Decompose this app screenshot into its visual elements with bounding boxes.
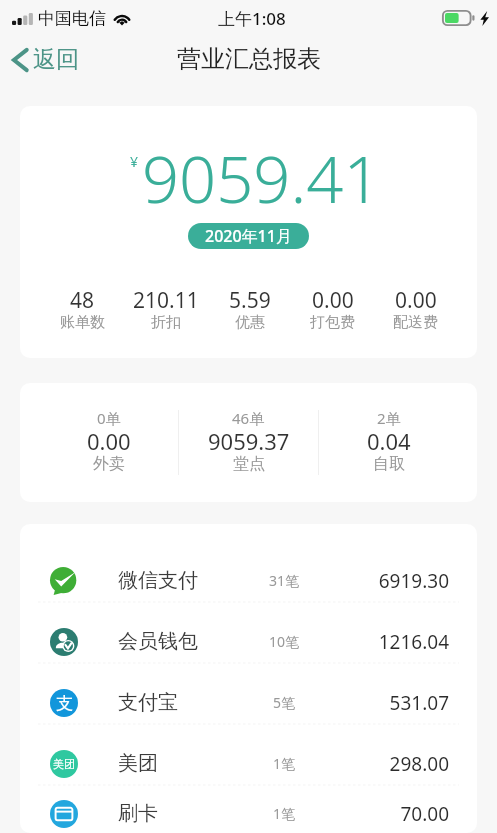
staticText: 10笔	[239, 632, 329, 651]
staticText: 支	[56, 693, 73, 714]
staticText: 0.00	[87, 426, 131, 456]
staticText: 9059.41	[142, 134, 381, 223]
staticText: 美团	[53, 757, 75, 771]
staticText: 531.07	[329, 690, 449, 716]
staticText: 美团	[118, 751, 158, 776]
button[interactable]: 微信支付	[20, 550, 477, 611]
staticText: 会员钱包	[118, 629, 198, 654]
staticText: 折扣	[151, 313, 181, 332]
button[interactable]: 美团	[20, 733, 477, 794]
staticText: 0.04	[367, 426, 411, 456]
staticText: 支付宝	[118, 690, 178, 715]
staticText: 返回	[33, 45, 79, 74]
button[interactable]: 支	[20, 672, 477, 733]
staticText: 0.00	[395, 286, 437, 315]
staticText: 210.11	[133, 286, 199, 315]
staticText: 1216.04	[329, 629, 449, 655]
staticText: 298.00	[329, 751, 449, 777]
staticText: 1笔	[239, 754, 329, 773]
staticText: 48	[70, 286, 95, 315]
staticText: 5笔	[239, 693, 329, 712]
staticText: 营业汇总报表	[177, 44, 321, 74]
staticText: 0单	[97, 408, 121, 428]
staticText: 堂点	[233, 454, 265, 474]
staticText: 优惠	[235, 313, 265, 332]
button[interactable]: 会员钱包	[20, 611, 477, 672]
staticText: 2单	[377, 408, 401, 428]
staticText: 外卖	[93, 454, 125, 474]
staticText: 46单	[232, 408, 265, 428]
staticText: 0.00	[312, 286, 354, 315]
staticText: 微信支付	[118, 568, 198, 593]
staticText: 6919.30	[329, 568, 449, 594]
staticText: 配送费	[393, 313, 438, 332]
button[interactable]: 刷卡	[20, 794, 477, 833]
staticText: 中国电信	[38, 8, 106, 29]
staticText: 打包费	[310, 313, 355, 332]
staticText: 9059.37	[208, 426, 290, 456]
staticText: 5.59	[229, 286, 271, 315]
staticText: 自取	[373, 454, 405, 474]
staticText: 账单数	[60, 313, 105, 332]
staticText: 1笔	[239, 804, 329, 823]
staticText: 刷卡	[118, 801, 158, 826]
staticText: ¥	[130, 152, 139, 171]
staticText: 上午1:08	[218, 7, 286, 30]
staticText: 31笔	[239, 571, 329, 590]
staticText: 70.00	[329, 801, 449, 827]
staticText: 2020年11月	[205, 225, 292, 247]
button[interactable]: 返回	[0, 39, 93, 80]
